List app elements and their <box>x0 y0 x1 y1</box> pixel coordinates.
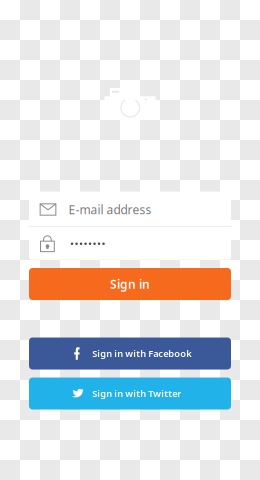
button[interactable]: Sign in with Twitter <box>29 377 231 409</box>
staticText: Sign in with Facebook <box>92 347 191 360</box>
button[interactable]: Sign in <box>29 268 231 300</box>
staticText: E-mail address <box>68 201 151 217</box>
button[interactable]: Sign in with Facebook <box>29 337 231 369</box>
staticText: Sign in with Twitter <box>92 387 181 400</box>
staticText: Sign in <box>110 276 150 292</box>
